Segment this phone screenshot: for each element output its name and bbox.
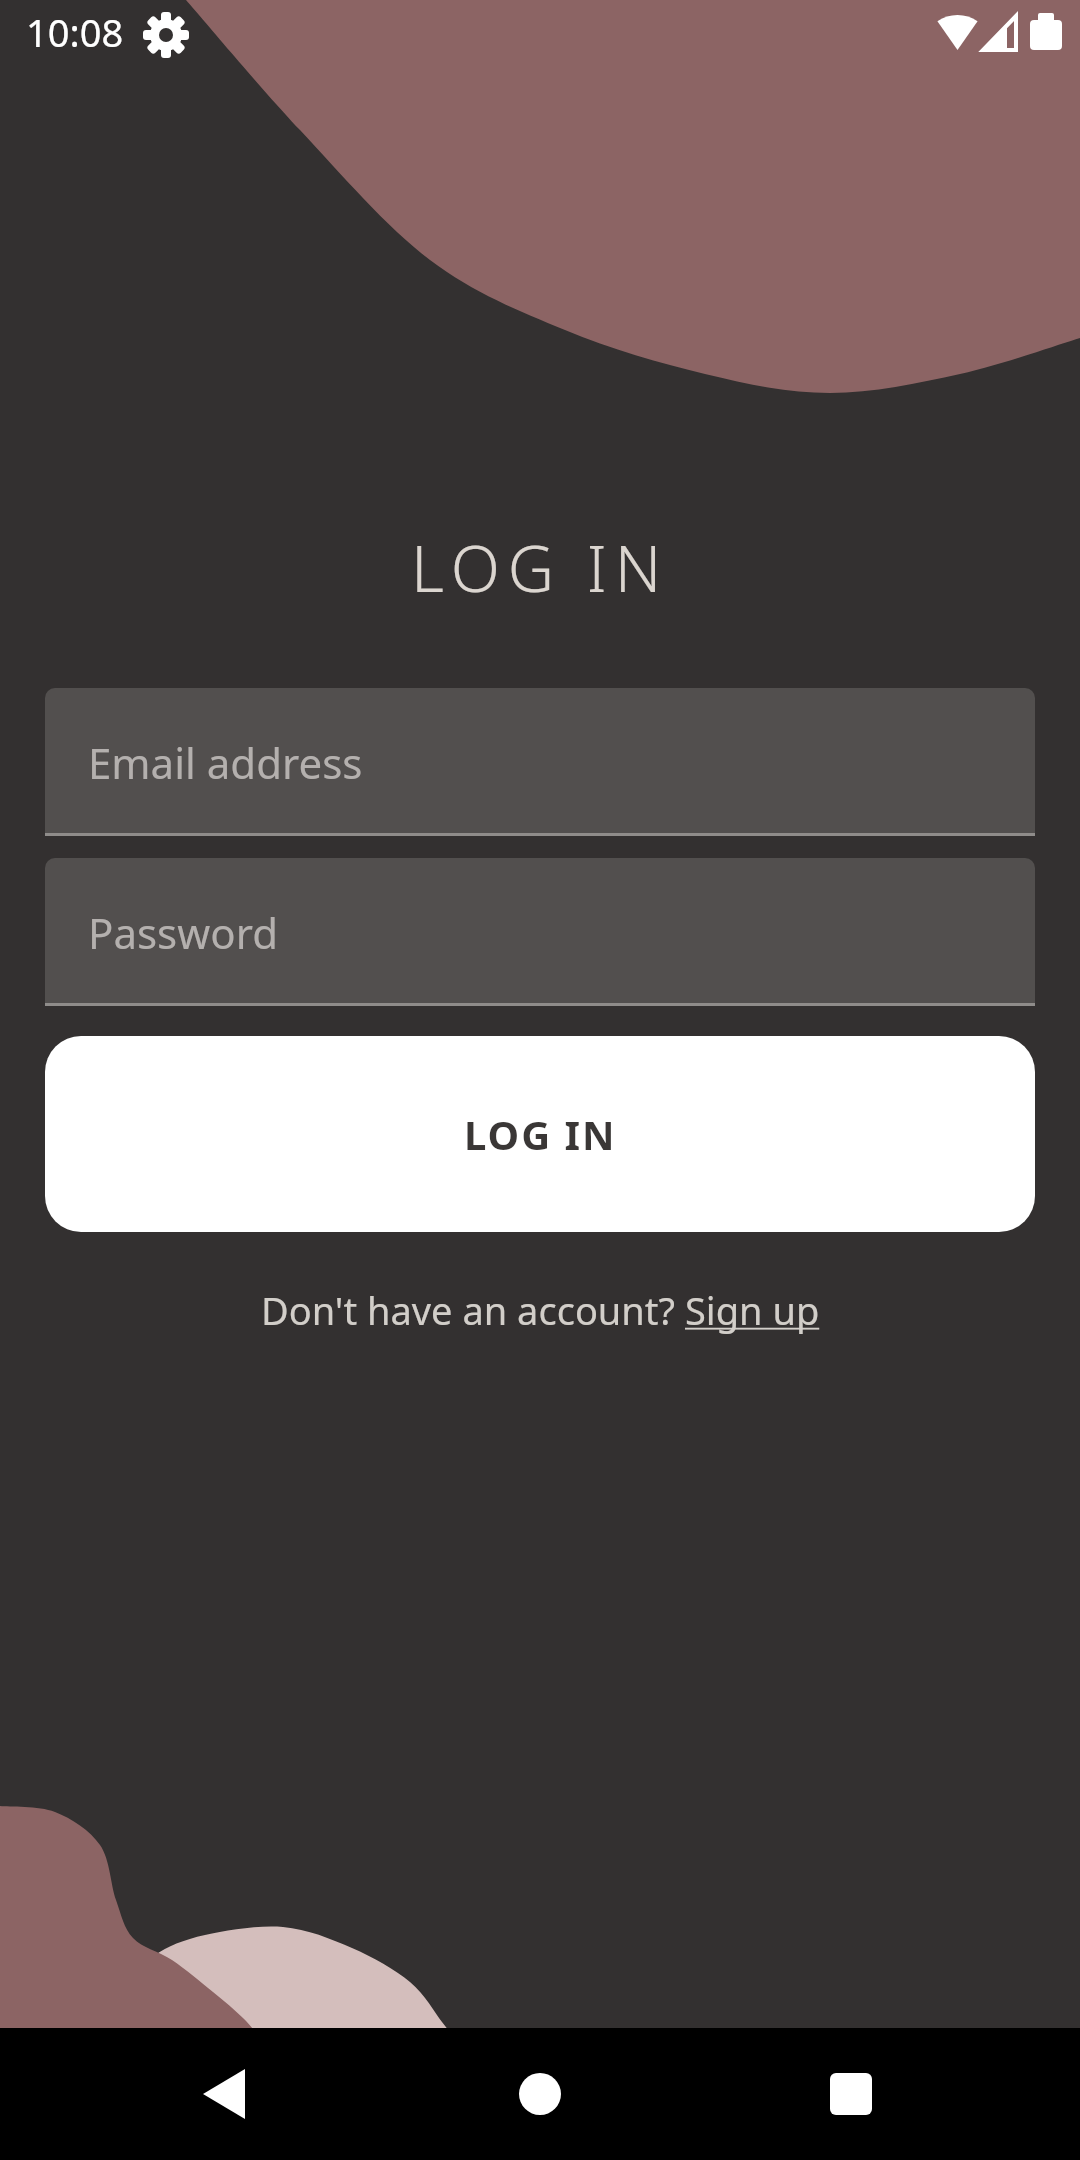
- button[interactable]: Email address: [45, 688, 1035, 836]
- button[interactable]: Password: [45, 858, 1035, 1006]
- button[interactable]: [510, 2064, 570, 2124]
- staticText: LOG IN: [464, 1107, 617, 1161]
- staticText: LOG IN: [411, 524, 670, 611]
- staticText: 10:08: [26, 6, 124, 58]
- staticText: Don't have an account?: [261, 1284, 685, 1336]
- button[interactable]: LOG IN: [45, 1036, 1035, 1232]
- button[interactable]: Sign up: [685, 1284, 820, 1336]
- staticText: Email address: [88, 734, 363, 791]
- button[interactable]: [194, 2064, 254, 2124]
- staticText: Password: [88, 904, 278, 961]
- button[interactable]: [821, 2064, 881, 2124]
